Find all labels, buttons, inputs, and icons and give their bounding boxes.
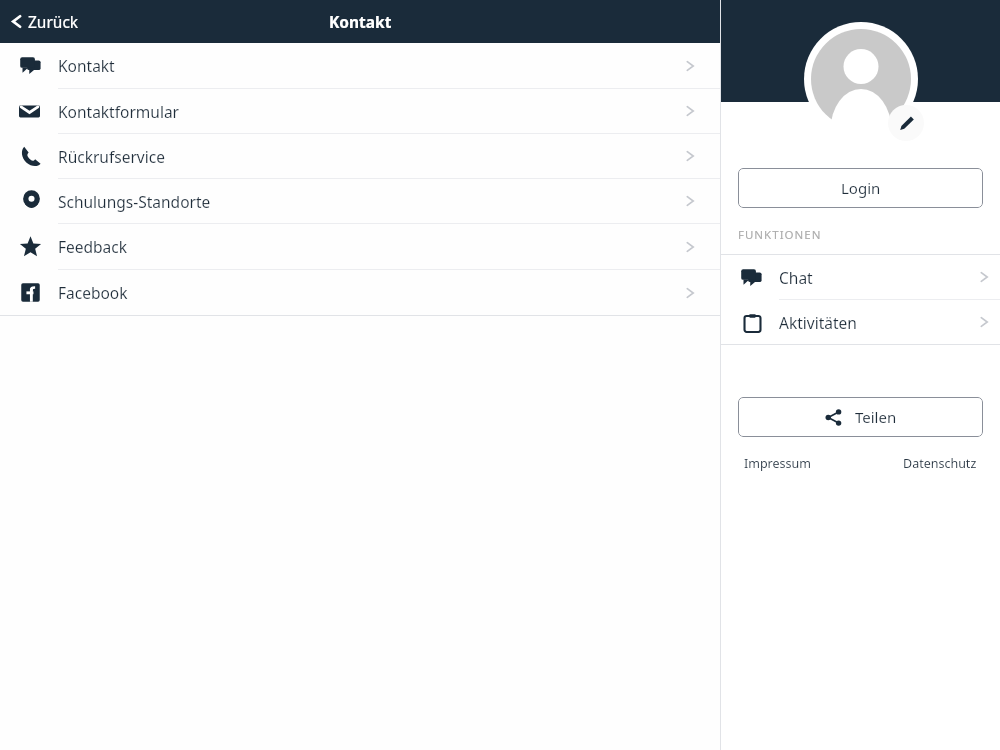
staticText: FUNKTIONEN [738, 227, 822, 243]
staticText: Zurück [28, 11, 79, 32]
button[interactable]: Zurück [0, 0, 91, 43]
button[interactable]: Teilen [738, 397, 983, 437]
staticText: Feedback [58, 236, 128, 257]
staticText: Kontaktformular [58, 101, 179, 122]
button[interactable]: Profil bearbeiten [888, 105, 924, 141]
button[interactable]: Facebook [0, 270, 720, 316]
button[interactable]: Datenschutz [899, 451, 981, 476]
button[interactable]: Login [738, 168, 983, 208]
staticText: Schulungs-Standorte [58, 191, 211, 212]
staticText: Aktivitäten [779, 312, 857, 333]
button[interactable]: Schulungs-Standorte [0, 179, 720, 224]
staticText: Datenschutz [903, 455, 977, 472]
staticText: Facebook [58, 282, 128, 303]
staticText: Chat [779, 267, 813, 288]
button[interactable]: Aktivitäten [721, 300, 1000, 345]
staticText: Rückrufservice [58, 146, 165, 167]
button[interactable]: Chat [721, 255, 1000, 300]
staticText: Kontakt [329, 11, 392, 32]
button[interactable]: Profilbild [804, 22, 918, 136]
staticText: Login [841, 178, 881, 198]
button[interactable]: Kontaktformular [0, 89, 720, 134]
staticText: Kontakt [58, 55, 115, 76]
staticText: Teilen [855, 407, 897, 427]
button[interactable]: Impressum [740, 451, 815, 476]
staticText: Impressum [744, 455, 811, 472]
button[interactable]: Kontakt [0, 43, 720, 89]
button[interactable]: Rückrufservice [0, 134, 720, 179]
button[interactable]: Feedback [0, 224, 720, 270]
